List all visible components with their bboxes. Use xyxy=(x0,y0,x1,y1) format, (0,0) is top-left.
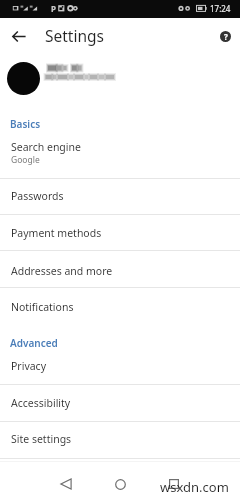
staticText: Basics xyxy=(10,117,41,131)
staticText: Advanced xyxy=(10,336,58,350)
button[interactable]: Back xyxy=(3,20,35,52)
button[interactable]: Privacy xyxy=(0,352,240,384)
staticText: Site settings xyxy=(11,432,72,446)
button[interactable] xyxy=(0,56,240,104)
staticText: Google xyxy=(11,154,40,166)
button[interactable]: Home xyxy=(100,471,140,497)
button[interactable]: Accessibility xyxy=(0,384,240,421)
staticText: ? xyxy=(224,31,228,42)
button[interactable]: Payment methods xyxy=(0,214,240,250)
button[interactable]: Recent apps xyxy=(154,471,194,497)
staticText: 17:24 xyxy=(210,3,231,14)
button[interactable]: Search engine xyxy=(0,133,240,178)
button[interactable]: Back xyxy=(46,471,86,497)
staticText: wsxdn.com xyxy=(160,478,229,496)
button[interactable]: Help and feedback xyxy=(209,20,240,52)
button[interactable]: Notifications xyxy=(0,287,240,324)
button[interactable]: Addresses and more xyxy=(0,250,240,287)
staticText: Payment methods xyxy=(11,226,102,240)
staticText: Passwords xyxy=(11,189,64,203)
staticText: Accessibility xyxy=(11,396,71,410)
button[interactable]: Passwords xyxy=(0,178,240,214)
staticText: P xyxy=(51,3,56,14)
staticText: Notifications xyxy=(11,300,74,314)
button[interactable]: Site settings xyxy=(0,421,240,458)
staticText: Privacy xyxy=(11,359,47,373)
staticText: Addresses and more xyxy=(11,264,113,278)
staticText: Search engine xyxy=(11,140,81,154)
staticText: Settings xyxy=(45,25,104,46)
